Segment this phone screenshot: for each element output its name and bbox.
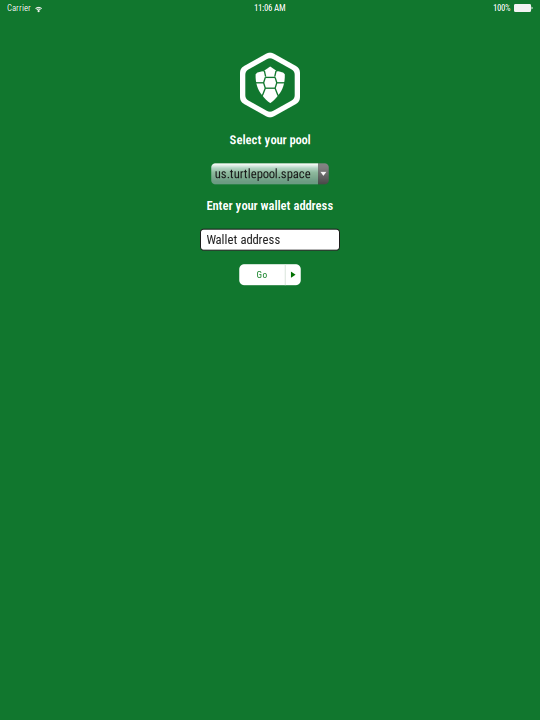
- button[interactable]: Go: [239, 264, 301, 285]
- staticText: 100%: [493, 3, 511, 13]
- button[interactable]: us.turtlepool.space: [211, 163, 329, 184]
- staticText: Wallet address: [206, 232, 280, 247]
- staticText: Go: [256, 269, 267, 280]
- staticText: 11:06 AM: [254, 3, 286, 13]
- button[interactable]: Wallet address: [200, 229, 339, 250]
- staticText: Enter your wallet address: [206, 198, 333, 213]
- staticText: Select your pool: [229, 132, 310, 147]
- staticText: Carrier: [7, 3, 31, 13]
- staticText: us.turtlepool.space: [215, 166, 311, 181]
